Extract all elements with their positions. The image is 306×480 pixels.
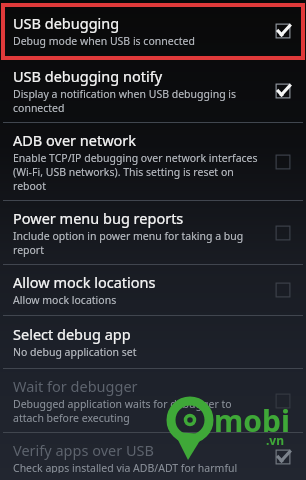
staticText: Select debug app xyxy=(13,324,131,344)
staticText: Power menu bug reports xyxy=(13,208,184,228)
staticText: Debugged application waits for debugger … xyxy=(13,397,262,425)
staticText: Display a notification when USB debuggin… xyxy=(13,87,262,115)
staticText: .vn xyxy=(266,432,285,448)
staticText: Enable TCP/IP debugging over network int… xyxy=(13,151,262,193)
button[interactable]: USB debugging xyxy=(0,9,306,56)
button[interactable]: USB debugging notify xyxy=(0,59,306,122)
button[interactable]: ADB over network xyxy=(0,123,306,200)
staticText: No debug application set xyxy=(13,345,137,359)
staticText: USB debugging notify xyxy=(13,66,163,86)
button[interactable]: Wait for debugger xyxy=(0,369,306,432)
button[interactable]: Power menu bug reports xyxy=(0,201,306,264)
staticText: ADB over network xyxy=(13,130,137,150)
staticText: mobi xyxy=(214,400,290,441)
staticText: Allow mock locations xyxy=(13,293,117,307)
button[interactable]: Verify apps over USB xyxy=(0,433,306,480)
staticText: Check apps installed via ADB/ADT for har… xyxy=(13,461,262,473)
staticText: Include option in power menu for taking … xyxy=(13,229,262,257)
button[interactable]: Select debug app xyxy=(0,316,306,368)
staticText: USB debugging xyxy=(13,13,120,33)
button[interactable]: Allow mock locations xyxy=(0,265,306,315)
staticText: Verify apps over USB xyxy=(13,440,154,460)
staticText: Allow mock locations xyxy=(13,272,156,292)
staticText: Debug mode when USB is connected xyxy=(13,34,195,48)
staticText: Wait for debugger xyxy=(13,376,138,396)
